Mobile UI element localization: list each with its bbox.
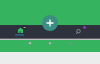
button[interactable] xyxy=(0,25,100,38)
button[interactable]: Add xyxy=(42,15,58,31)
button[interactable]: Home xyxy=(12,25,30,37)
button[interactable]: Search xyxy=(72,26,87,37)
